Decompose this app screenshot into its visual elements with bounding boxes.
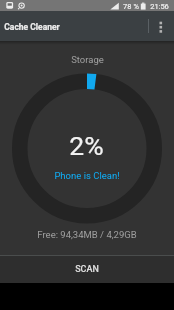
staticText: Phone is Clean! — [54, 170, 120, 181]
staticText: 2% — [69, 130, 104, 161]
staticText: 78 % — [123, 2, 139, 11]
staticText: Storage — [71, 54, 104, 65]
staticText: 21:56 — [150, 2, 169, 11]
button[interactable]: More options — [152, 11, 174, 41]
button[interactable]: SCAN — [0, 256, 174, 283]
staticText: Cache Cleaner — [4, 22, 60, 32]
staticText: SCAN — [75, 264, 99, 275]
staticText: Free: 94,34MB / 4,29GB — [37, 229, 137, 240]
